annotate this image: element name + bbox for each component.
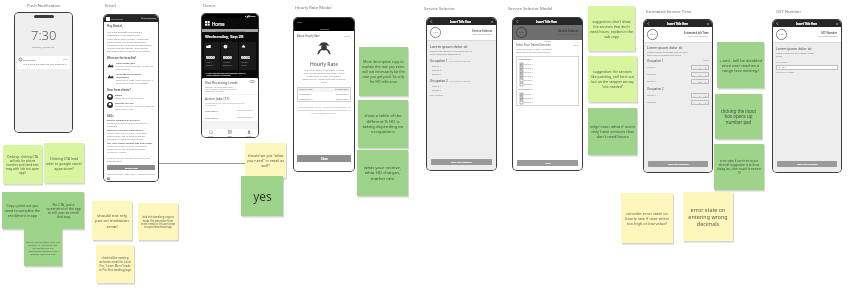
- button[interactable]: +: [703, 72, 709, 77]
- button[interactable]: Firstname L.: [205, 116, 255, 119]
- button[interactable]: Back: [515, 19, 520, 24]
- button[interactable]: Copy: point out you need to complete the…: [2, 192, 43, 229]
- button[interactable]: +: [703, 65, 709, 70]
- button[interactable]: Service 1: [520, 93, 577, 96]
- button[interactable]: −: [691, 93, 696, 98]
- button[interactable]: Close: [573, 44, 579, 47]
- button[interactable]: Back: [646, 21, 651, 26]
- button[interactable]: clicking the input box opens up number p…: [715, 94, 762, 139]
- staticText: Service 3: [524, 101, 533, 104]
- button[interactable]: Edit Services: [430, 94, 443, 97]
- button[interactable]: Service 3: [520, 101, 577, 104]
- staticText: Estimated Service Time: [646, 9, 692, 15]
- button[interactable]: Back: [775, 21, 780, 26]
- button[interactable]: Service 5: [520, 79, 577, 82]
- button[interactable]: 0000: [221, 42, 238, 70]
- staticText: Service Selector: [472, 29, 493, 33]
- staticText: ✕ unsubscribe: [141, 17, 156, 20]
- staticText: Occupation 1: [299, 93, 313, 96]
- button[interactable]: Service 3: [520, 71, 577, 74]
- button[interactable]: +: [703, 93, 709, 98]
- button[interactable]: Service 2: [520, 97, 577, 100]
- button[interactable]: +: [703, 79, 709, 84]
- button[interactable]: Close: [705, 21, 710, 26]
- staticText: Average Response Time: [223, 61, 232, 68]
- staticText: Service 4: [432, 73, 442, 76]
- staticText: Lorem ipsum dolor sit amet, consectetur …: [107, 122, 155, 128]
- button[interactable]: should not rely just on invitation email: [92, 201, 132, 240]
- button[interactable]: More descriptive copy to explain the rat…: [359, 47, 408, 96]
- button[interactable]: 0000: [239, 42, 256, 70]
- button[interactable]: what your receive, what HD charges, mark…: [357, 150, 408, 196]
- button[interactable]: Service 6: [520, 83, 577, 86]
- staticText: Occupation 2: [430, 79, 448, 83]
- staticText: $40.00/hour: [336, 93, 349, 96]
- staticText: Service 3: [524, 71, 533, 74]
- button[interactable]: 0000: [204, 42, 220, 70]
- button[interactable]: Not Receiving Leads: [205, 80, 255, 92]
- button[interactable]: Close: [297, 155, 351, 162]
- button[interactable]: Service 1: [520, 63, 577, 66]
- button[interactable]: suggestion: don't show the services that…: [588, 6, 635, 51]
- other: Close: [835, 22, 839, 26]
- staticText: Insert Title Here: [667, 22, 689, 26]
- button[interactable]: should we put "what you need" in email a…: [245, 143, 286, 178]
- staticText: −: [693, 94, 695, 98]
- staticText: Reach out to leads. Now customers. A wor…: [116, 79, 155, 85]
- button[interactable]: Enroll Now: [107, 165, 155, 170]
- staticText: suggestion: for services like painting, …: [590, 69, 635, 89]
- button[interactable]: Save and Continue: [431, 159, 492, 165]
- button[interactable]: Done: [517, 160, 578, 166]
- button[interactable]: Leads: [220, 129, 239, 137]
- button[interactable]: No CTA, just a screenshot of the app to …: [43, 192, 84, 229]
- button[interactable]: −: [691, 100, 696, 105]
- button[interactable]: consider error state on hourly rate if u…: [621, 193, 673, 243]
- button[interactable]: checked the existing welcome email for L…: [96, 245, 134, 283]
- staticText: Occupation 1: [430, 59, 448, 63]
- button[interactable]: suggestion: for services like painting, …: [588, 56, 637, 102]
- button[interactable]: + and - will be disabled once user reach…: [717, 42, 764, 88]
- staticText: To be on the list, just wait and let us …: [107, 157, 155, 163]
- button[interactable]: edge case: what if users only have servi…: [588, 108, 637, 155]
- button[interactable]: Ensure these eligble pros are already 1P…: [24, 228, 62, 266]
- staticText: Clicking CTA lead uder to google store/a…: [46, 156, 82, 171]
- button[interactable]: Save and Continue: [777, 161, 837, 167]
- button[interactable]: error state on entering wrong decimals: [683, 192, 733, 241]
- button[interactable]: Close: [834, 21, 839, 26]
- button[interactable]: Service 4: [520, 75, 577, 78]
- button[interactable]: Close: [344, 34, 351, 37]
- button[interactable]: look into tweaking copy to make the tran…: [138, 203, 178, 240]
- button[interactable]: −: [691, 79, 696, 84]
- staticText: suggestion: don't show the services that…: [590, 19, 633, 39]
- button[interactable]: Save and Continue: [648, 161, 708, 167]
- button[interactable]: −: [691, 65, 696, 70]
- button[interactable]: Home: [202, 129, 220, 137]
- button[interactable]: Tax ID #: [776, 65, 838, 70]
- button[interactable]: Profile: [239, 129, 258, 137]
- staticText: What is Thumbtack Local Pro?: [107, 119, 140, 122]
- button[interactable]: Home: [205, 18, 255, 29]
- button[interactable]: Clicking CTA lead uder to google store/a…: [44, 143, 84, 183]
- button[interactable]: show a table of the different % HD is ta…: [358, 100, 408, 148]
- button[interactable]: Back: [429, 19, 434, 24]
- other: Back: [775, 21, 780, 26]
- button[interactable]: Service 2: [520, 67, 577, 70]
- button[interactable]: −: [691, 72, 696, 77]
- button[interactable]: Thumbtack: [17, 56, 70, 69]
- button[interactable]: Desktop: clicking CTA will ask for phone…: [3, 145, 42, 184]
- staticText: Lorem ipsum dolor sit: [647, 45, 683, 50]
- staticText: Current Rate: [335, 88, 349, 91]
- staticText: The best so far, the offer that's defini…: [115, 105, 155, 111]
- button[interactable]: yes: [241, 176, 283, 216]
- button[interactable]: error state if user tries to put decimal…: [714, 144, 764, 190]
- button[interactable]: Close: [489, 19, 494, 24]
- button[interactable]: Firstname L.: [205, 109, 255, 112]
- staticText: Service 1: [432, 85, 442, 88]
- button[interactable]: +: [703, 100, 709, 105]
- button[interactable]: About GST Number: [776, 71, 795, 74]
- staticText: Next: Total Summary: [817, 35, 838, 38]
- staticText: now: [63, 58, 68, 61]
- staticText: Occupation 2: [518, 88, 533, 91]
